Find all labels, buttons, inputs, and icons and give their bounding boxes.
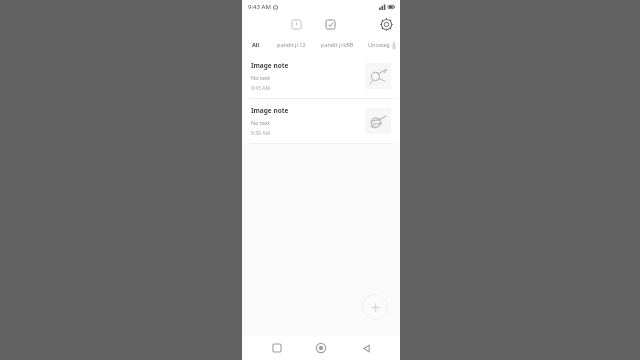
staticText: pandit ji 12: [277, 41, 306, 48]
staticText: 9:39 AM: [251, 130, 270, 137]
staticText: No text: [251, 74, 270, 81]
button[interactable]: Home: [311, 338, 331, 358]
button[interactable]: Manage categories: [393, 38, 395, 51]
staticText: pandit ji kBB: [321, 41, 354, 48]
staticText: All: [252, 41, 260, 48]
button[interactable]: Select notes: [322, 16, 338, 32]
button[interactable]: Reminder: [288, 16, 304, 32]
button[interactable]: Recent apps: [267, 338, 287, 358]
staticText: 9:43 AM: [251, 85, 270, 92]
button[interactable]: All: [248, 38, 264, 51]
button[interactable]: Image note: [242, 54, 400, 98]
button[interactable]: Back: [356, 338, 376, 358]
button[interactable]: Image note: [242, 99, 400, 143]
staticText: Image note: [251, 61, 289, 70]
button[interactable]: Settings: [378, 16, 395, 33]
button[interactable]: pandit ji kBB: [317, 38, 358, 51]
staticText: Image note: [251, 106, 289, 115]
button[interactable]: Uncateg: [365, 38, 393, 51]
button[interactable]: pandit ji 12: [273, 38, 310, 51]
button[interactable]: New note: [362, 294, 388, 320]
staticText: Uncateg: [368, 41, 390, 48]
staticText: No text: [251, 119, 270, 126]
staticText: 9:43 AM: [248, 3, 271, 11]
